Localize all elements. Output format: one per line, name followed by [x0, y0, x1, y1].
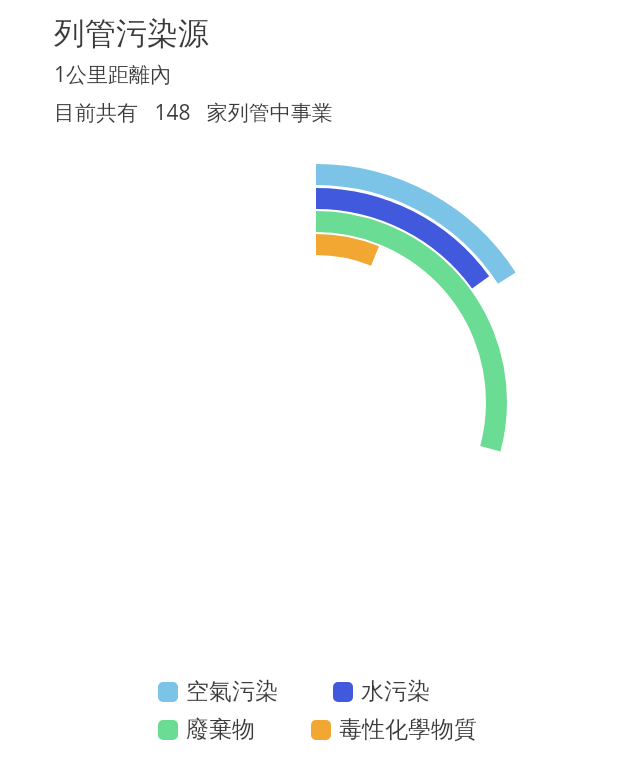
button[interactable]: 毒性化學物質	[311, 715, 477, 744]
staticText: 水污染	[361, 677, 430, 706]
staticText: 列管污染源	[54, 14, 209, 53]
staticText: 1公里距離內	[54, 60, 172, 89]
button[interactable]: 空氣污染	[158, 677, 278, 706]
button[interactable]: 水污染	[333, 677, 430, 706]
staticText: 廢棄物	[186, 715, 255, 744]
staticText: 目前共有 148 家列管中事業	[54, 98, 333, 127]
staticText: 毒性化學物質	[339, 715, 477, 744]
button[interactable]: 廢棄物	[158, 715, 255, 744]
staticText: 空氣污染	[186, 677, 278, 706]
